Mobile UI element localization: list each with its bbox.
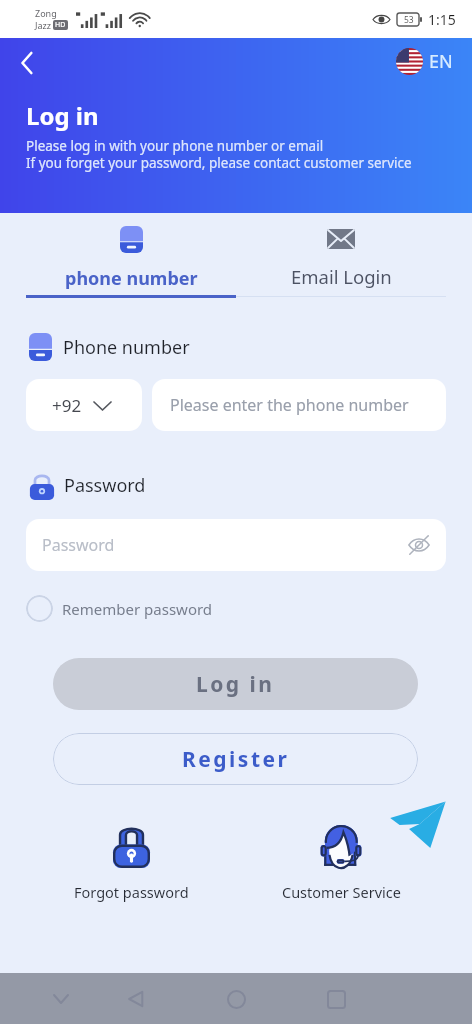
staticText: 53 [404, 14, 414, 26]
staticText: Customer Service [282, 882, 401, 902]
button[interactable]: Telegram [389, 799, 448, 849]
staticText: Remember password [62, 599, 213, 619]
staticText: +92 [52, 394, 82, 417]
button[interactable]: Log in [53, 658, 418, 710]
button[interactable]: Please enter the phone number [152, 379, 446, 431]
staticText: Email Login [291, 264, 392, 289]
button[interactable]: Register [53, 733, 418, 785]
staticText: HD [55, 20, 66, 30]
staticText: Register [182, 745, 290, 774]
button[interactable]: +92 [26, 379, 142, 431]
staticText: Log in [26, 99, 99, 132]
staticText: EN [429, 49, 453, 74]
staticText: Log in [196, 670, 275, 699]
button[interactable]: Customer Service [276, 825, 406, 902]
button[interactable]: Recents [316, 979, 356, 1019]
button[interactable]: Forgot password [66, 826, 196, 902]
button[interactable]: Home [216, 979, 256, 1019]
button[interactable]: Password [26, 519, 446, 571]
staticText: Please enter the phone number [170, 394, 409, 416]
staticText: Password [64, 473, 146, 498]
button[interactable]: Show password [404, 530, 434, 560]
button[interactable]: Email Login [236, 213, 446, 298]
staticText: Forgot password [74, 882, 189, 902]
staticText: phone number [65, 266, 198, 291]
staticText: Phone number [63, 335, 190, 360]
button[interactable]: Remember password [26, 595, 213, 622]
button[interactable]: phone number [26, 213, 236, 298]
staticText: Zong [35, 7, 57, 19]
staticText: 1:15 [428, 10, 456, 29]
button[interactable]: Back [116, 979, 156, 1019]
staticText: Password [42, 534, 115, 556]
staticText: Jazz [35, 19, 51, 31]
button[interactable]: Back [10, 46, 44, 80]
staticText: Please log in with your phone number or … [26, 137, 412, 172]
button[interactable]: EN [396, 48, 453, 75]
